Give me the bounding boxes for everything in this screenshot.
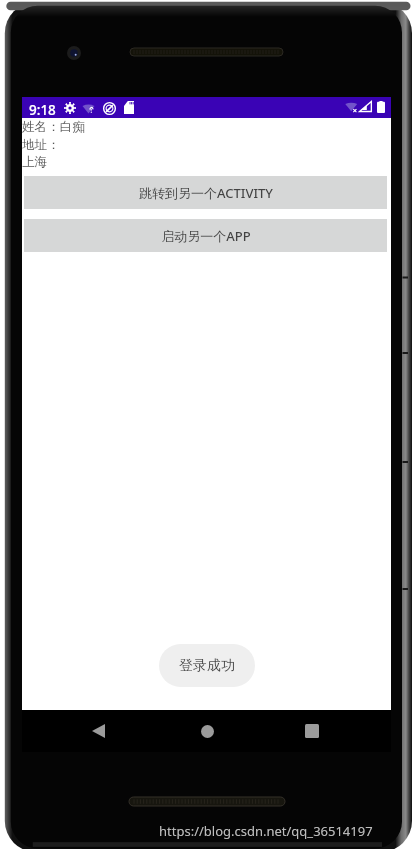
staticText: 地址： — [22, 137, 60, 153]
staticText: https://blog.csdn.net/qq_36514197 — [159, 822, 373, 840]
button[interactable]: 登录成功 — [159, 644, 255, 687]
button[interactable]: Back — [76, 710, 120, 752]
button[interactable]: Recent apps — [290, 710, 334, 752]
staticText: 姓名：白痴 — [22, 119, 85, 135]
staticText: 9:18 — [29, 101, 56, 119]
staticText: 跳转到另一个ACTIVITY — [139, 184, 273, 202]
button[interactable]: 启动另一个APP — [24, 219, 387, 252]
staticText: 登录成功 — [179, 657, 235, 675]
button[interactable]: 跳转到另一个ACTIVITY — [24, 176, 387, 209]
staticText: 上海 — [22, 154, 48, 170]
staticText: 启动另一个APP — [161, 227, 251, 245]
button[interactable]: Home — [185, 710, 229, 752]
